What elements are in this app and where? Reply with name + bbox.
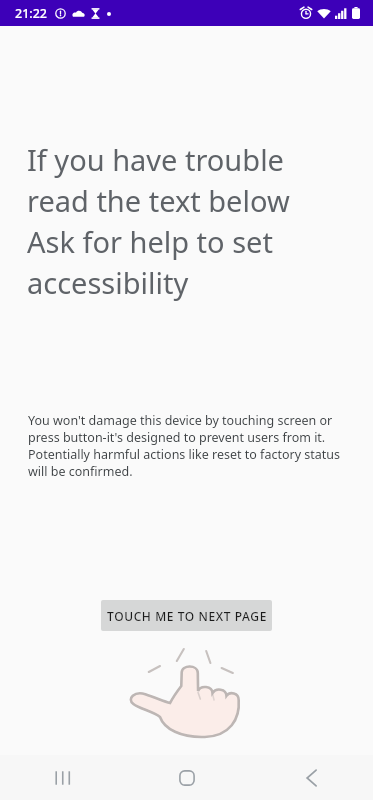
staticText: TOUCH ME TO NEXT PAGE	[107, 608, 267, 624]
staticText: You won't damage this device by touching…	[28, 412, 350, 480]
button[interactable]: Home	[125, 755, 249, 800]
button[interactable]: TOUCH ME TO NEXT PAGE	[101, 600, 272, 631]
button[interactable]: Recent apps	[0, 755, 125, 800]
staticText: 21:22	[15, 5, 48, 22]
button[interactable]: Back	[249, 755, 373, 800]
staticText: If you have trouble read the text below …	[27, 140, 290, 303]
